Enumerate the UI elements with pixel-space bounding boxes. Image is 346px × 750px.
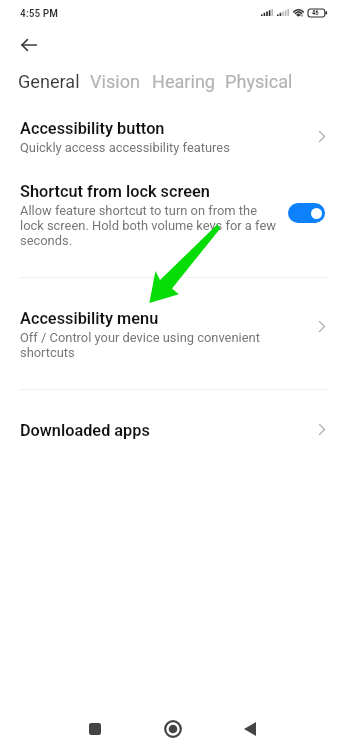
button[interactable]: Shortcut from lock screen	[288, 203, 325, 223]
staticText: Vision	[90, 71, 140, 92]
staticText: Allow feature shortcut to turn on from t…	[20, 203, 276, 248]
staticText: General	[18, 71, 80, 92]
staticText: Accessibility button	[20, 119, 165, 138]
button[interactable]: Home	[151, 707, 195, 750]
button[interactable]: Recent apps	[73, 707, 117, 750]
staticText: Quickly access accessibility features	[20, 140, 230, 155]
button[interactable]: Physical	[225, 68, 293, 95]
button[interactable]: Hearing	[152, 68, 216, 95]
staticText: Physical	[225, 71, 293, 92]
staticText: Shortcut from lock screen	[20, 182, 210, 201]
staticText: Hearing	[152, 71, 216, 92]
staticText: Accessibility menu	[20, 309, 159, 328]
staticText: 46	[312, 9, 319, 17]
button[interactable]: Downloaded apps	[0, 421, 346, 442]
button[interactable]: Shortcut from lock screen	[0, 182, 346, 248]
button[interactable]: Vision	[90, 68, 140, 95]
button[interactable]: Accessibility button	[0, 119, 346, 155]
staticText: 4:55 PM	[20, 6, 58, 19]
button[interactable]: Accessibility menu	[0, 309, 346, 360]
button[interactable]: Back	[12, 28, 46, 62]
staticText: Off / Control your device using convenie…	[20, 330, 260, 360]
button[interactable]: Back	[228, 707, 272, 750]
staticText: Downloaded apps	[20, 421, 150, 440]
button[interactable]: General	[18, 68, 80, 95]
